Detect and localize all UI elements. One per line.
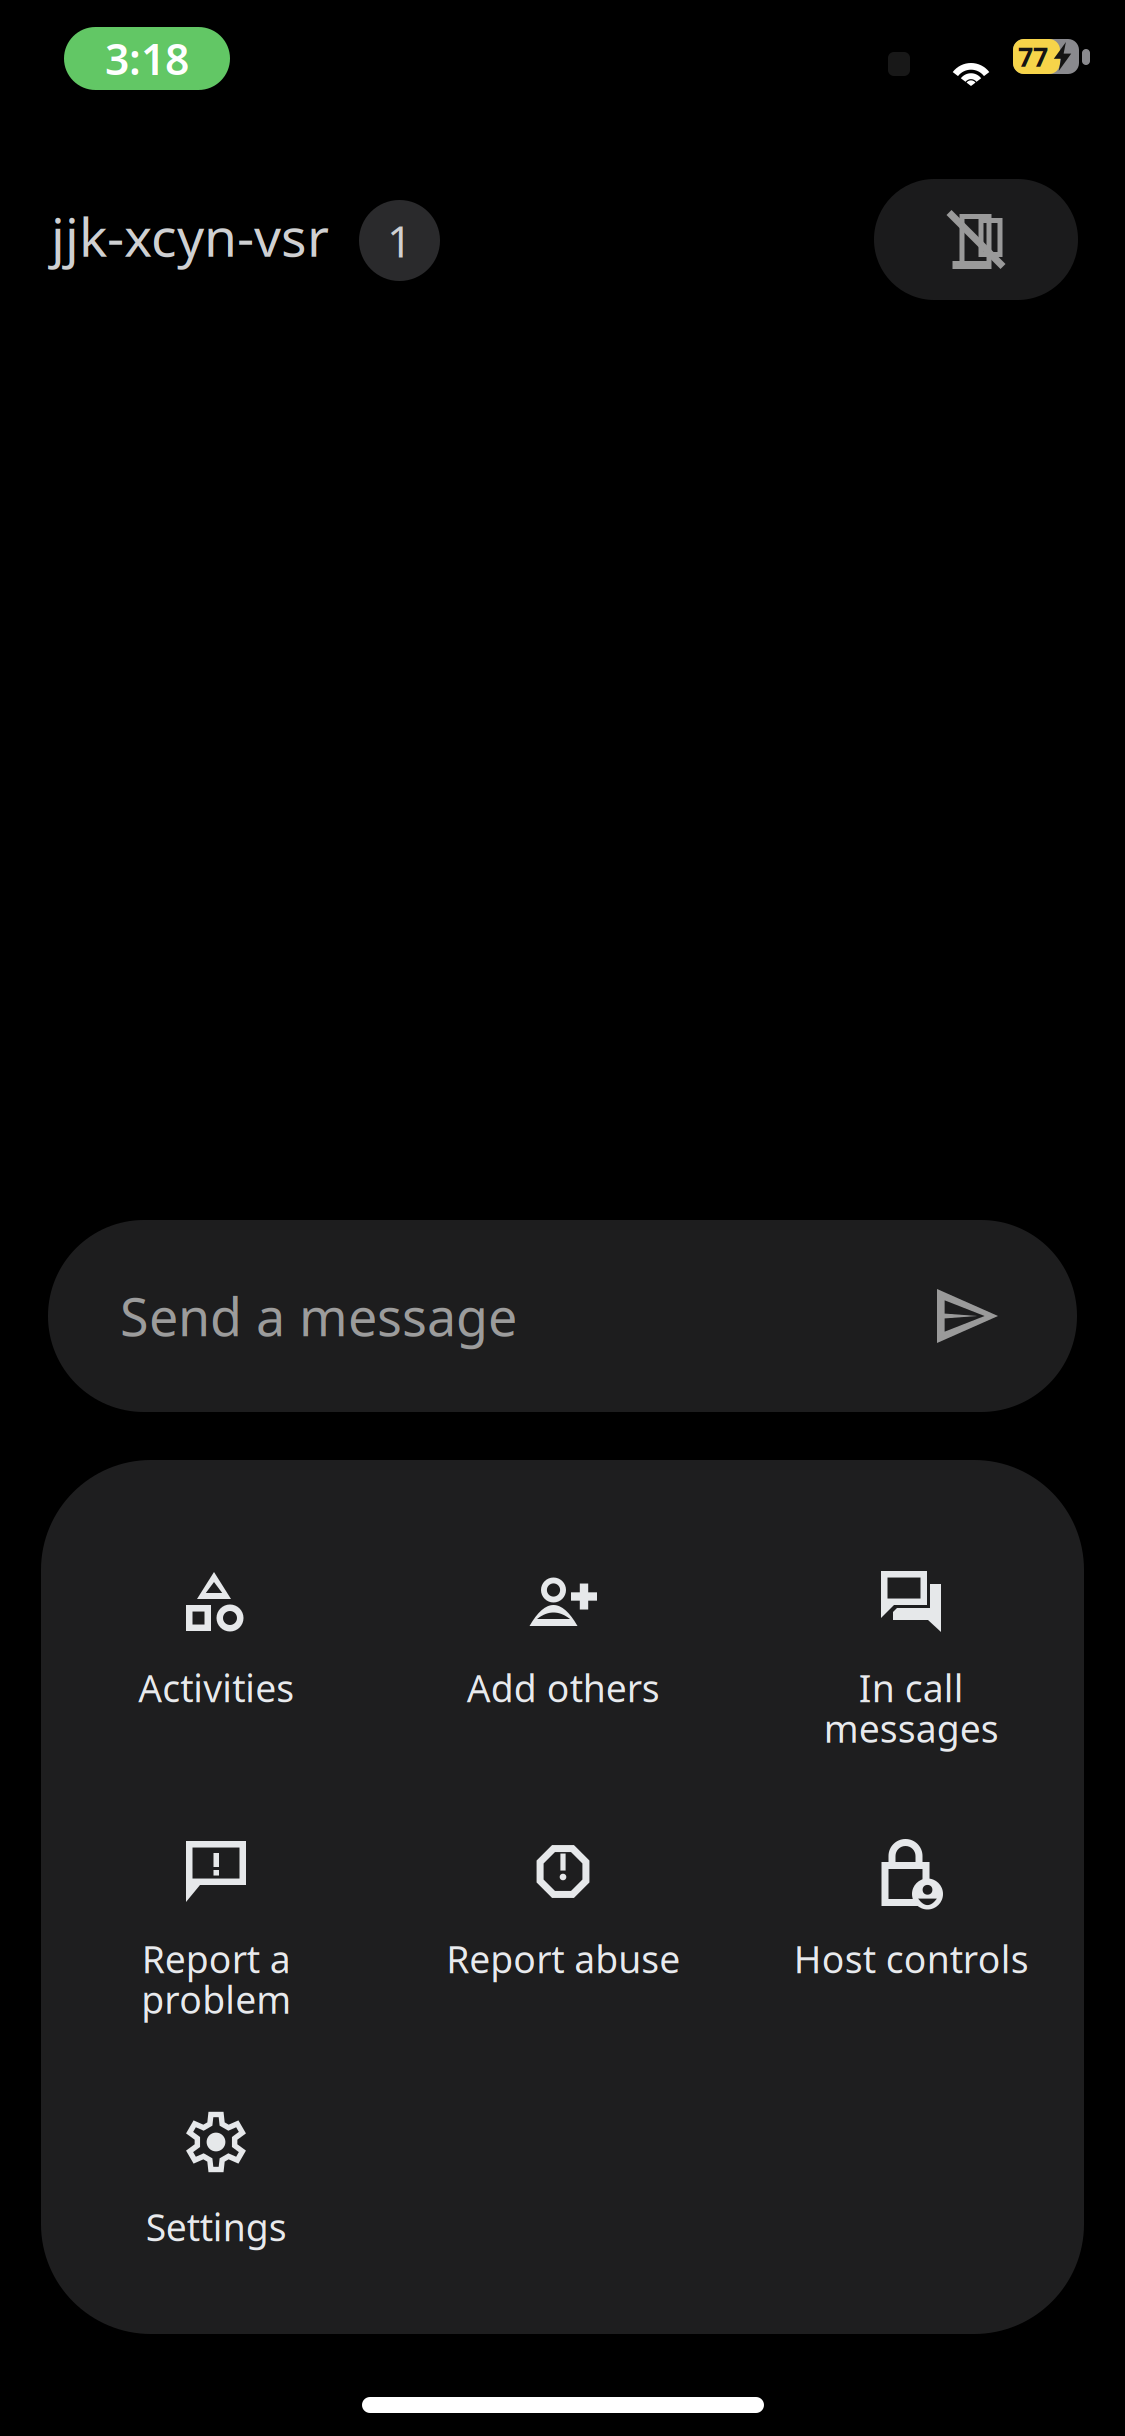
button[interactable]: Report abuse	[390, 1790, 736, 2042]
button[interactable]: 1 participant	[359, 200, 440, 281]
button[interactable]: Activities	[43, 1518, 389, 1770]
staticText: Add others	[466, 1663, 659, 1713]
button[interactable]: Host controls	[738, 1783, 1084, 2035]
button[interactable]: Send a message	[48, 1220, 1077, 1412]
staticText: Host controls	[793, 1934, 1028, 1984]
staticText: 77	[1018, 39, 1048, 74]
button[interactable]: In call messages	[738, 1517, 1084, 1769]
button[interactable]: Stop presenting	[874, 179, 1078, 300]
staticText: In call messages	[823, 1663, 998, 1753]
staticText: 1	[387, 211, 412, 270]
button[interactable]: Report a problem	[43, 1787, 389, 2039]
staticText: Report abuse	[446, 1934, 680, 1984]
staticText: Settings	[145, 2202, 286, 2252]
button[interactable]: Settings	[43, 2057, 389, 2309]
staticText: Activities	[138, 1663, 294, 1713]
button[interactable]: Add others	[390, 1523, 736, 1775]
staticText: Report a problem	[141, 1934, 291, 2024]
staticText: Send a message	[120, 1281, 517, 1351]
staticText: jjk-xcyn-vsr	[51, 201, 329, 271]
staticText: 3:18	[105, 30, 189, 87]
